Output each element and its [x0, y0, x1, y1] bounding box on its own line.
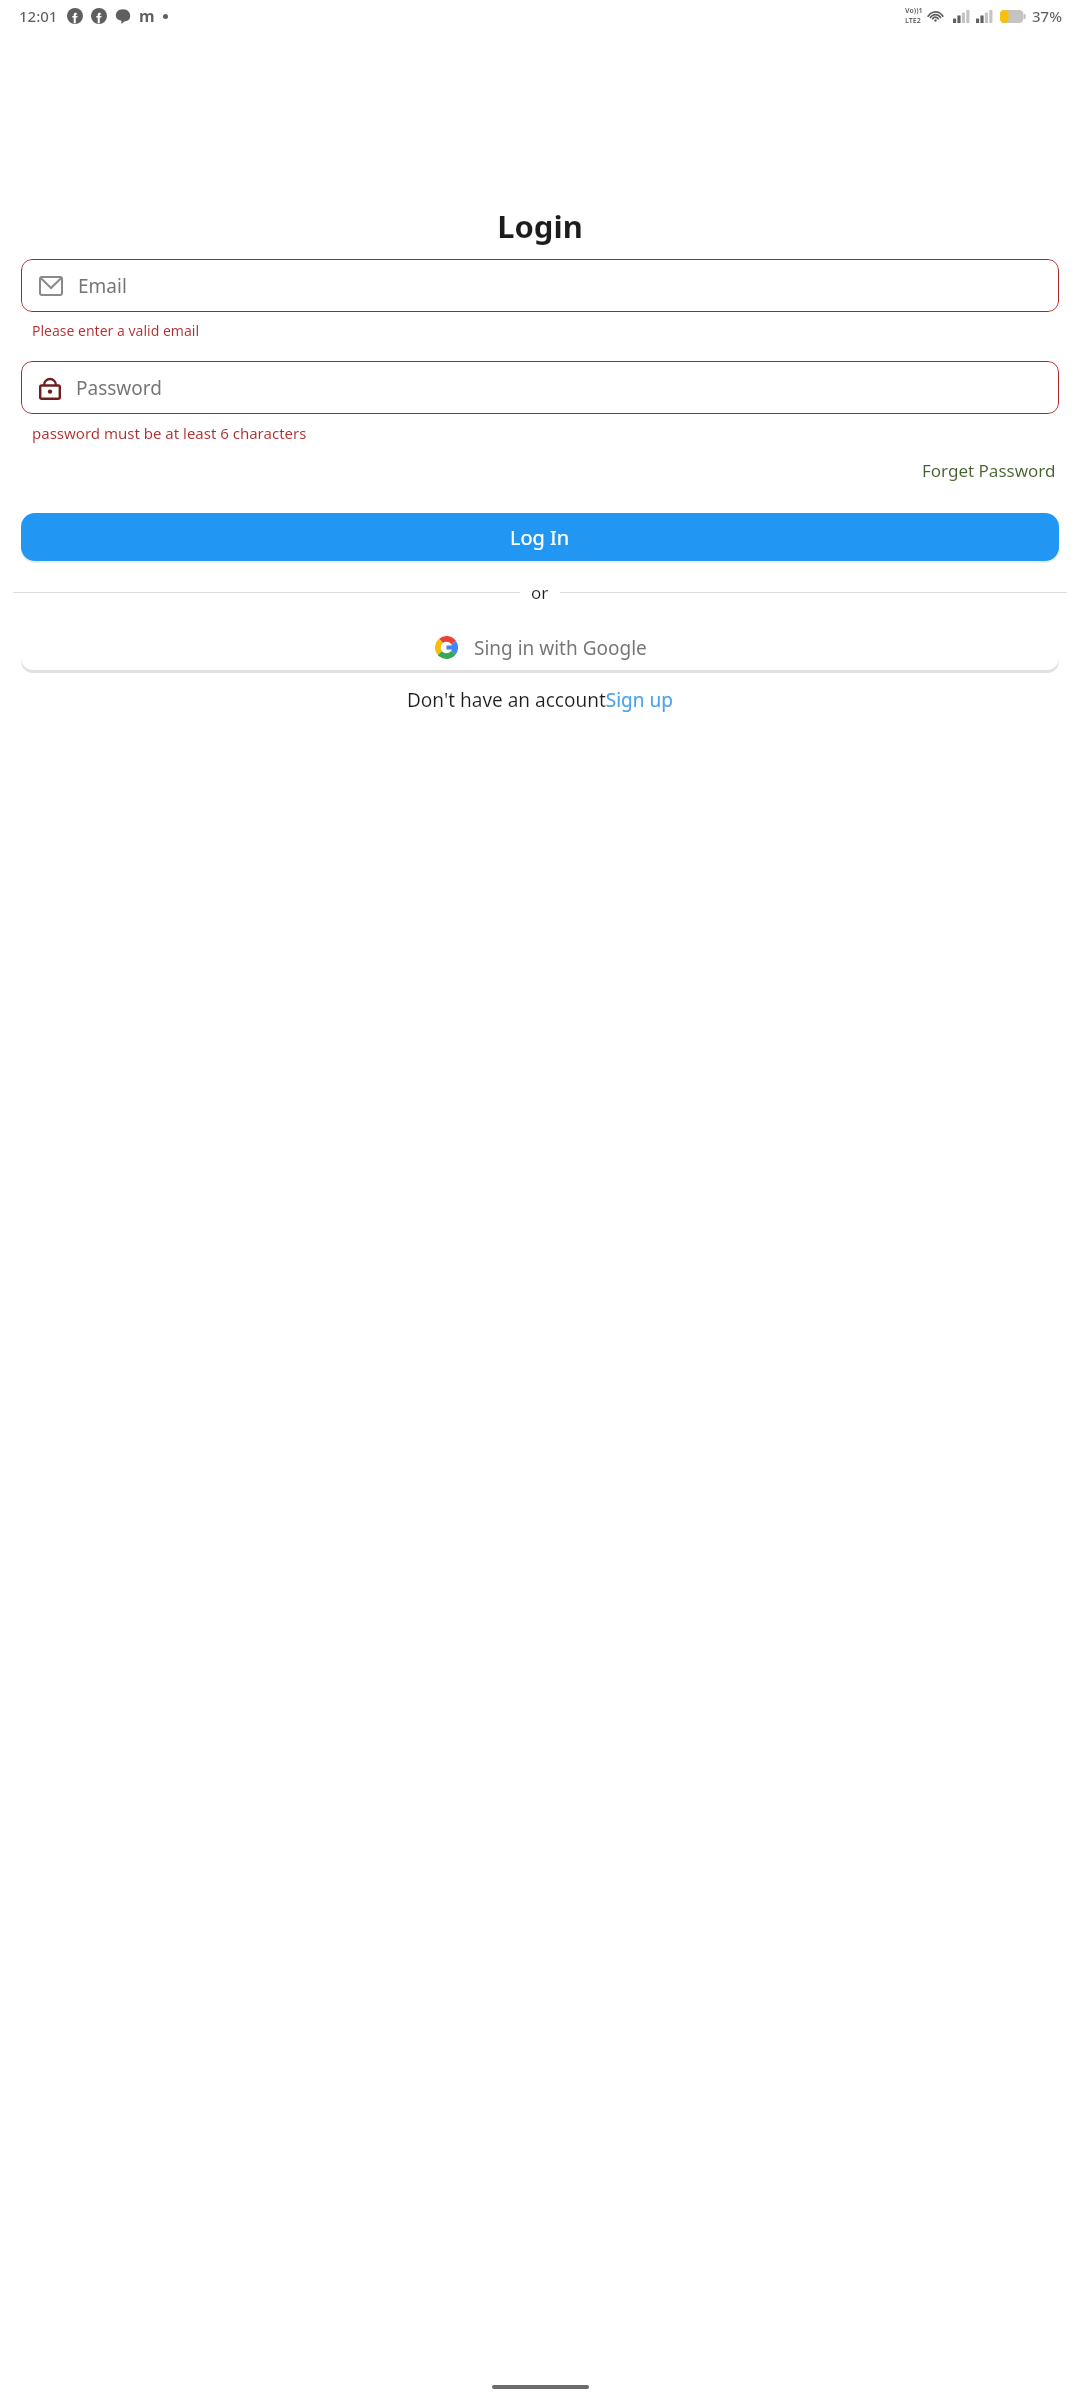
staticText: Don't have an accountSign up [407, 687, 673, 713]
staticText: Please enter a valid email [32, 321, 199, 340]
staticText: Sing in with Google [474, 635, 647, 661]
staticText: m [139, 5, 155, 27]
staticText: Log In [510, 524, 570, 551]
staticText: LTE2 [905, 16, 921, 26]
staticText: password must be at least 6 characters [32, 423, 307, 443]
staticText: Password [76, 375, 162, 401]
button[interactable]: Forget Password [920, 457, 1058, 484]
button[interactable]: Log In [21, 513, 1059, 561]
button[interactable]: Email [21, 259, 1059, 312]
button[interactable]: Sing in with Google [21, 625, 1059, 670]
staticText: 12:01 [19, 6, 58, 26]
staticText: or [531, 581, 549, 604]
staticText: Forget Password [922, 459, 1056, 482]
staticText: Vo))1 [905, 6, 923, 16]
staticText: 37% [1032, 6, 1062, 26]
staticText: Email [78, 273, 127, 299]
button[interactable]: Don't have an accountSign up [403, 684, 677, 716]
staticText: Login [0, 205, 1080, 247]
button[interactable]: Password [21, 361, 1059, 414]
